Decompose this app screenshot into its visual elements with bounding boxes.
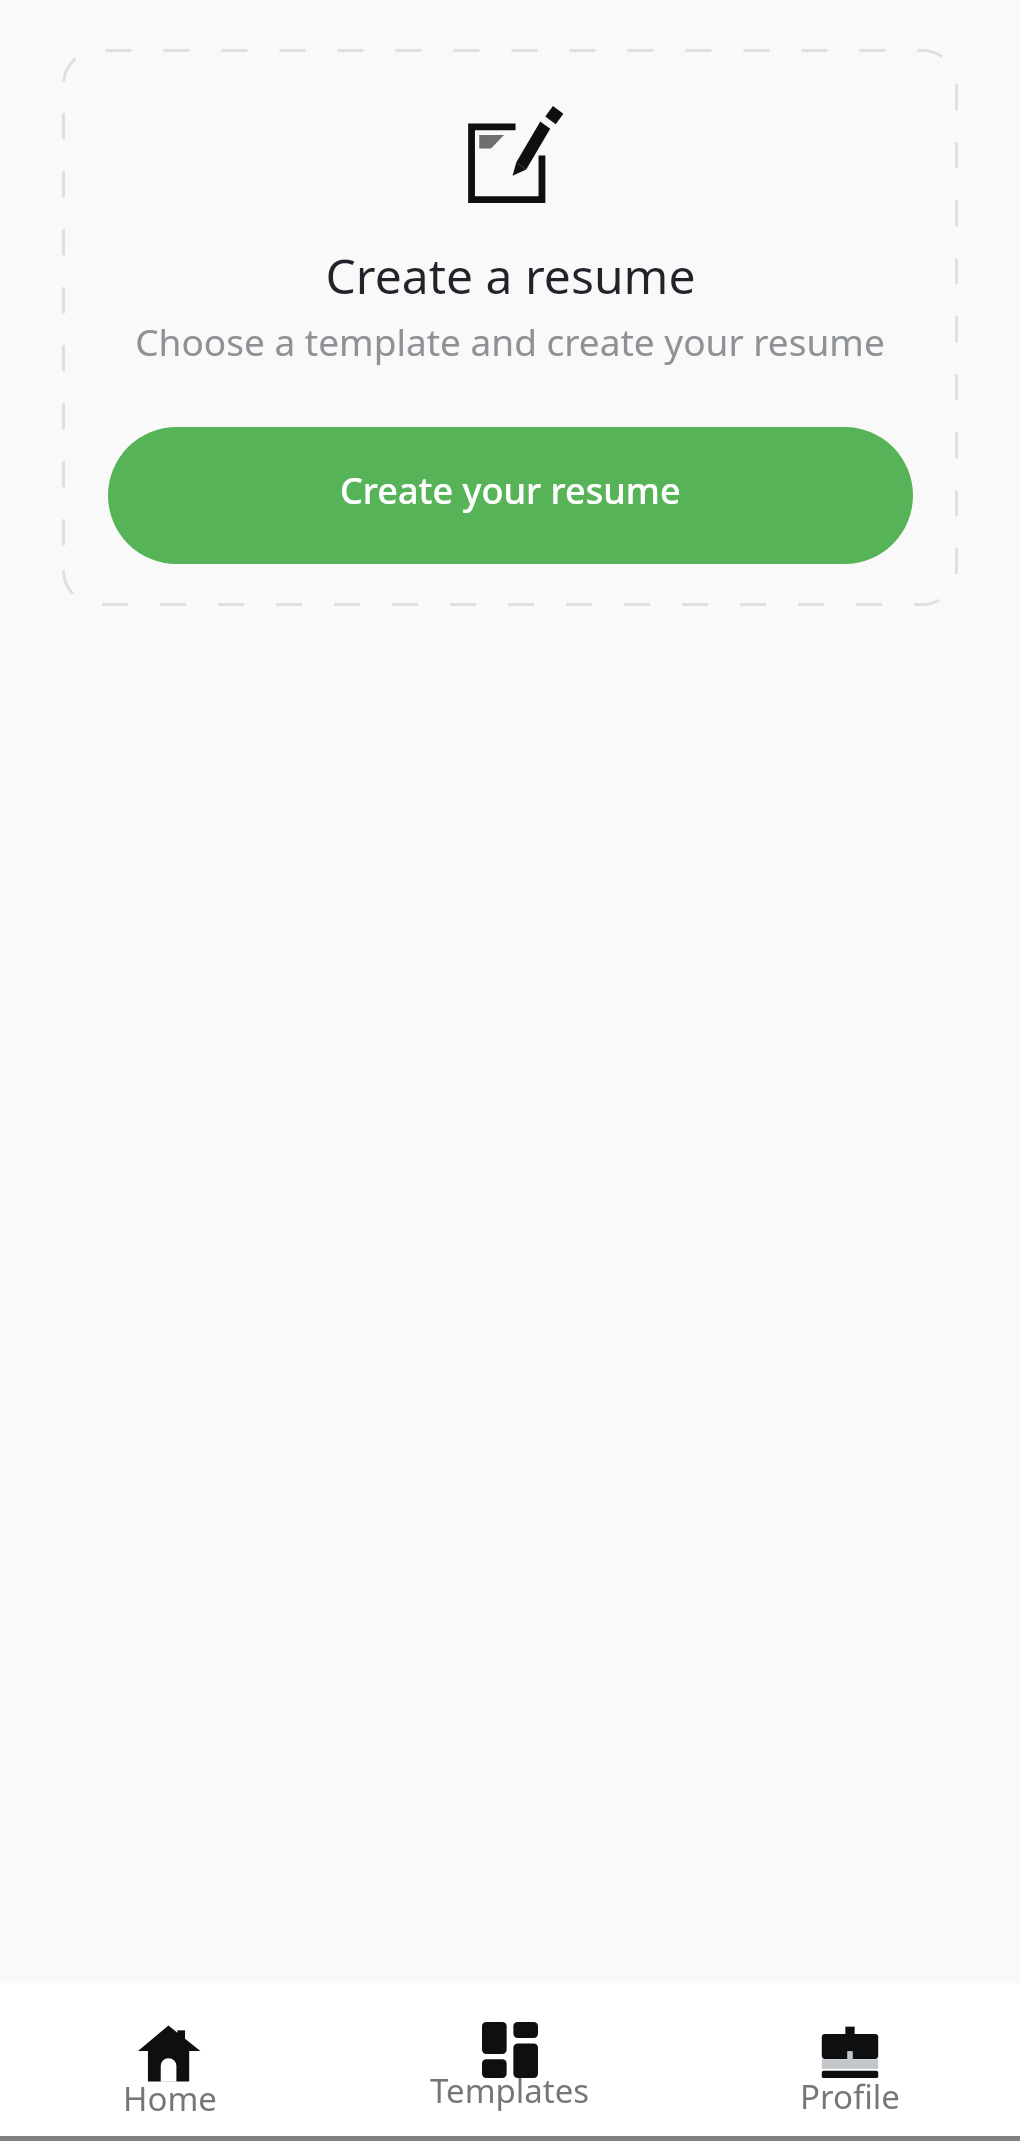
staticText: Home: [123, 2076, 217, 2121]
button[interactable]: Profile: [680, 1983, 1020, 2136]
button[interactable]: Home: [0, 1983, 340, 2136]
staticText: Create your resume: [340, 466, 681, 515]
other: Create a resume: [460, 100, 570, 210]
button[interactable]: Templates: [340, 1983, 680, 2136]
staticText: Profile: [800, 2074, 900, 2119]
staticText: Templates: [430, 2068, 590, 2113]
button[interactable]: Create your resume: [108, 427, 913, 564]
staticText: Create a resume: [325, 243, 696, 308]
staticText: Choose a template and create your resume: [135, 316, 885, 366]
